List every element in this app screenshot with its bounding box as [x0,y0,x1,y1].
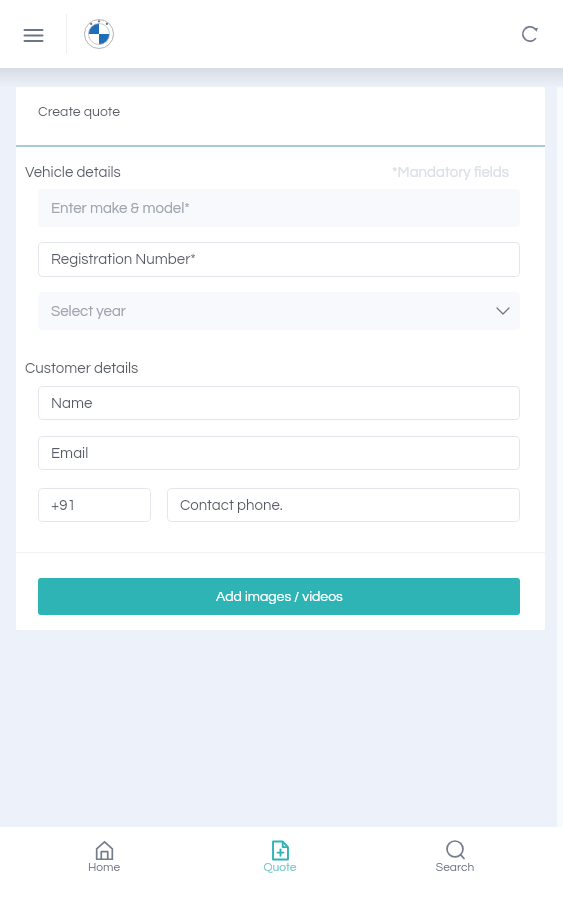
staticText: Registration Number* [51,252,196,267]
staticText: Email [51,446,89,461]
staticText: Name [51,396,93,411]
staticText: Select year [51,304,127,319]
staticText: Vehicle details [25,165,121,180]
button[interactable]: Menu [13,14,54,55]
staticText: +91 [51,498,76,513]
staticText: Create quote [38,105,121,119]
button[interactable]: Registration Number* [38,242,520,277]
button[interactable]: Select year [38,292,520,330]
button[interactable]: Name [38,386,520,420]
button[interactable]: Add images / videos [38,578,520,615]
staticText: Customer details [25,361,139,376]
button[interactable]: Search [412,841,498,873]
button[interactable]: Enter make & model* [38,189,520,227]
button[interactable]: Refresh [510,14,550,54]
button[interactable]: +91 [38,488,151,522]
button[interactable]: Create quote [16,87,545,145]
button[interactable]: Home [61,841,147,873]
staticText: Search [412,861,498,873]
staticText: *Mandatory fields [392,165,510,180]
staticText: Home [61,861,147,873]
staticText: Add images / videos [216,590,343,604]
button[interactable]: Quote [237,841,323,873]
staticText: Contact phone. [180,498,283,513]
staticText: Enter make & model* [51,201,190,216]
button[interactable]: Email [38,436,520,470]
staticText: Quote [237,861,323,873]
button[interactable]: Contact phone. [167,488,520,522]
